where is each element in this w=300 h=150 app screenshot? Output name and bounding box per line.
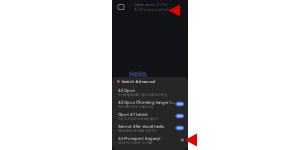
staticText: Ideal for Claude for tasks (118, 141, 152, 144)
staticText: For everyday tasks, Opus-class thinking (118, 93, 167, 96)
button[interactable]: Sonnet 4 for visual tasks (112, 122, 188, 134)
staticText: Sonnet 4 for visual tasks (118, 124, 164, 129)
button[interactable]: Conversations (116, 2, 126, 12)
staticText: Max (177, 114, 182, 118)
button[interactable]: Opus 4.1 Latest (112, 110, 188, 122)
staticText: Hello. (129, 70, 148, 78)
staticText: Switch Advanced (122, 79, 156, 84)
staticText: Sonnet (145, 3, 155, 7)
staticText: 3.5 Pro expert (Legacy) (118, 136, 160, 141)
staticText: Our in-depth research agent (118, 117, 158, 120)
staticText: 4.5 Pro (156, 3, 167, 7)
staticText: 4.5 Opus (118, 88, 135, 93)
button[interactable]: Claude (134, 1, 176, 13)
button[interactable]: Switch Advanced (112, 77, 188, 86)
staticText: Opus 4.1 Latest (118, 112, 148, 117)
button[interactable]: 3.5 Pro expert (Legacy) (112, 134, 188, 146)
staticText: Max (177, 126, 182, 130)
staticText: Max (177, 102, 182, 106)
button[interactable]: 4.5 Opus (112, 86, 188, 98)
staticText: 4.5 Opus (Thinking longer than me) (118, 100, 174, 105)
staticText: Claude (134, 3, 144, 7)
staticText: Uses extended reasoning (118, 105, 153, 108)
staticText: 4.5 Pro supported v1.2 (134, 7, 176, 12)
staticText: Fast answers at a scale that fits (118, 129, 156, 132)
button[interactable]: 4.5 Opus (Thinking longer than me) (112, 98, 188, 110)
